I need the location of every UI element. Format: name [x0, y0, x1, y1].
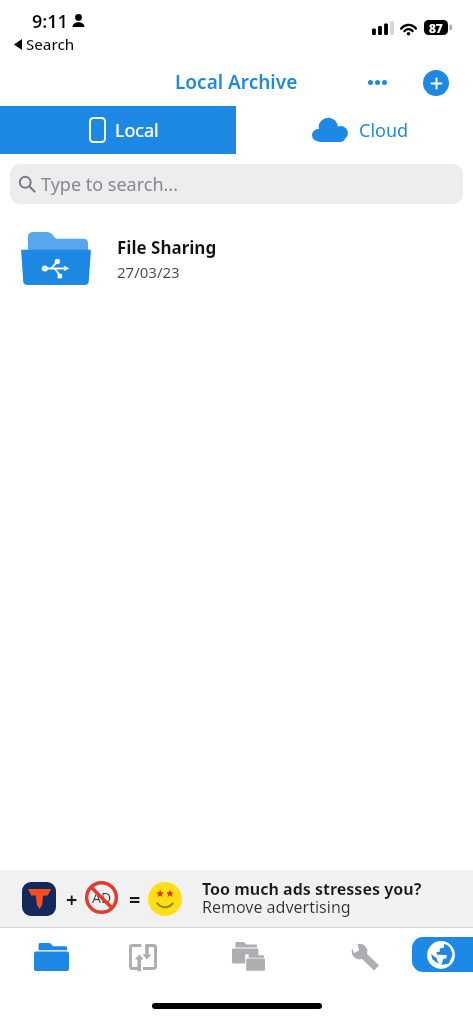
button[interactable]: Local: [0, 106, 236, 154]
button[interactable]: Copy: [208, 928, 288, 985]
staticText: Remove advertising: [202, 896, 351, 918]
button[interactable]: Type to search...: [10, 164, 463, 204]
button[interactable]: Transfers: [103, 928, 183, 985]
button[interactable]: Search: [10, 33, 79, 55]
button[interactable]: Cloud: [236, 106, 473, 154]
staticText: 9:11: [32, 9, 68, 34]
button[interactable]: Browser: [412, 937, 473, 972]
staticText: AD: [92, 888, 112, 907]
staticText: Cloud: [359, 118, 409, 143]
staticText: Search: [26, 34, 75, 54]
staticText: File Sharing: [117, 236, 217, 259]
staticText: Local: [115, 118, 159, 143]
button[interactable]: Tools: [324, 928, 404, 985]
button[interactable]: Files: [10, 928, 92, 985]
staticText: 87: [429, 20, 443, 35]
staticText: Local Archive: [175, 69, 298, 95]
button[interactable]: +: [0, 870, 473, 928]
staticText: =: [129, 886, 141, 913]
staticText: +: [66, 886, 78, 913]
button[interactable]: File Sharing: [0, 214, 473, 296]
button[interactable]: Add: [416, 63, 455, 102]
button[interactable]: More options: [357, 62, 397, 102]
staticText: Type to search...: [41, 172, 178, 197]
staticText: Too much ads stresses you?: [202, 878, 422, 900]
staticText: 27/03/23: [117, 262, 180, 282]
